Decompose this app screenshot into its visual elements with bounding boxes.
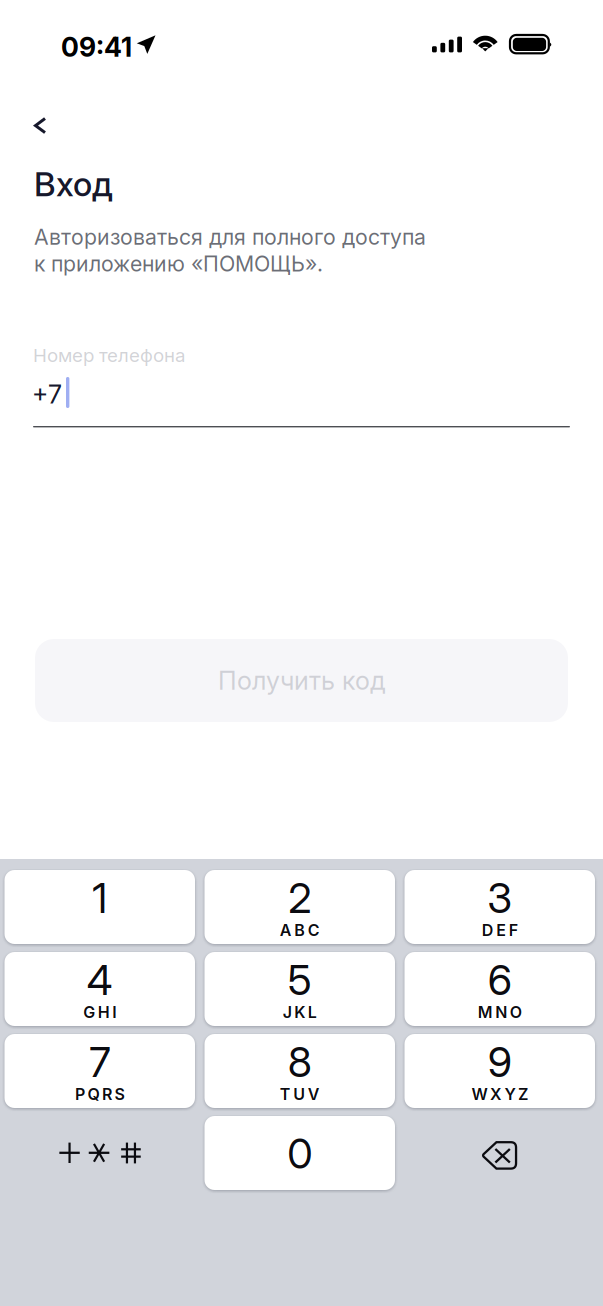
button[interactable]: 0 [204,1116,395,1190]
button[interactable]: 5 [204,952,395,1026]
staticText: +7 [32,379,62,410]
staticText: ABC [280,920,320,940]
staticText: 8 [288,1037,312,1087]
button[interactable]: 2 [204,870,395,944]
staticText: 9 [488,1037,512,1087]
staticText: 3 [487,873,512,923]
staticText: DEF [482,920,518,940]
button[interactable]: 3 [404,870,595,944]
button[interactable]: Back [0,103,68,148]
staticText: 1 [92,873,107,923]
staticText: Вход [34,164,113,204]
button[interactable]: Получить код [35,639,568,722]
button[interactable]: 7 [4,1034,195,1108]
staticText: GHI [83,1002,116,1022]
button[interactable]: Symbols [4,1116,195,1190]
staticText: MNO [478,1002,522,1022]
staticText: 09:41 [61,31,132,63]
staticText: JKL [283,1002,317,1022]
button[interactable]: Delete [404,1116,595,1190]
staticText: 6 [488,955,512,1005]
staticText: 5 [288,955,312,1005]
button[interactable]: 8 [204,1034,395,1108]
button[interactable]: 4 [4,952,195,1026]
staticText: PQRS [75,1084,124,1104]
staticText: 4 [87,955,113,1005]
staticText: 7 [89,1037,110,1087]
button[interactable]: 9 [404,1034,595,1108]
button[interactable]: 6 [404,952,595,1026]
staticText: Получить код [218,665,385,696]
staticText: Авторизоваться для полного доступа [34,224,426,250]
button[interactable]: 1 [4,870,195,944]
staticText: Номер телефона [33,344,185,367]
staticText: 2 [288,873,311,923]
staticText: WXYZ [471,1084,528,1104]
staticText: 0 [287,1128,312,1178]
staticText: к приложению «ПОМОЩЬ». [34,251,323,277]
staticText: TUV [280,1084,320,1104]
